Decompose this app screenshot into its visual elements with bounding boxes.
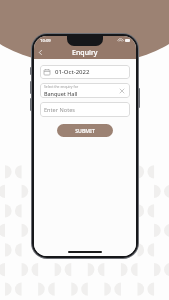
staticText: 01-Oct-2022	[55, 68, 90, 76]
staticText: Enter Notes	[44, 106, 75, 114]
button[interactable]: SUBMIT	[57, 124, 113, 137]
staticText: SUBMIT	[75, 127, 95, 134]
staticText: Enquiry	[72, 48, 98, 58]
button[interactable]: Enter Notes	[40, 102, 130, 117]
button[interactable]: Clear selection	[118, 87, 126, 95]
staticText: Banquet Hall	[44, 90, 78, 97]
button[interactable]: 01-Oct-2022	[40, 65, 130, 79]
staticText: 10:09	[40, 38, 51, 44]
button[interactable]: Select the enquiry for	[40, 83, 130, 98]
button[interactable]: Back	[34, 46, 47, 59]
staticText: Select the enquiry for	[44, 84, 79, 89]
